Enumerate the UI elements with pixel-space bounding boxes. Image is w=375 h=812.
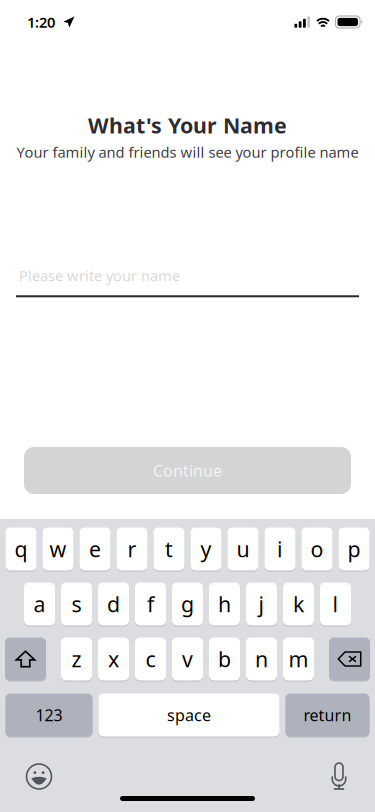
staticText: a [33, 590, 45, 618]
staticText: g [181, 590, 194, 618]
button[interactable]: z [61, 637, 92, 681]
button[interactable]: k [283, 582, 314, 626]
staticText: space [167, 704, 211, 726]
button[interactable]: b [209, 637, 240, 681]
staticText: return [303, 704, 351, 726]
staticText: h [218, 590, 231, 618]
staticText: n [255, 645, 268, 673]
button[interactable]: a [24, 582, 55, 626]
button[interactable]: l [320, 582, 351, 626]
button[interactable]: s [61, 582, 92, 626]
button[interactable]: 123 [5, 693, 92, 737]
staticText: e [89, 535, 101, 563]
button[interactable]: w [42, 527, 73, 571]
button[interactable]: space [98, 693, 279, 737]
staticText: m [288, 645, 308, 673]
button[interactable]: m [283, 637, 314, 681]
button[interactable]: return [285, 693, 369, 737]
staticText: w [49, 535, 66, 563]
staticText: f [147, 590, 154, 618]
staticText: s [71, 590, 81, 618]
staticText: t [165, 535, 173, 563]
staticText: x [108, 645, 119, 673]
staticText: Please write your name [19, 266, 180, 285]
button[interactable]: e [79, 527, 110, 571]
staticText: v [182, 645, 193, 673]
staticText: p [347, 535, 360, 563]
staticText: 123 [35, 704, 62, 726]
button[interactable]: Continue [24, 447, 351, 494]
button[interactable]: v [172, 637, 203, 681]
button[interactable]: x [98, 637, 129, 681]
button[interactable]: n [246, 637, 277, 681]
staticText: d [107, 590, 120, 618]
button[interactable]: f [135, 582, 166, 626]
button[interactable]: g [172, 582, 203, 626]
staticText: y [200, 535, 211, 563]
button[interactable]: y [190, 527, 221, 571]
staticText: q [14, 535, 27, 563]
staticText: i [277, 535, 283, 563]
button[interactable]: p [338, 527, 369, 571]
staticText: 1:20 [27, 12, 55, 32]
button[interactable]: q [5, 527, 36, 571]
button[interactable]: r [116, 527, 147, 571]
staticText: j [258, 590, 264, 618]
button[interactable]: Shift [5, 637, 46, 681]
button[interactable]: o [301, 527, 332, 571]
button[interactable]: Delete [329, 637, 370, 681]
staticText: c [145, 645, 155, 673]
button[interactable]: Dictation [328, 763, 350, 790]
staticText: What's Your Name [88, 111, 287, 139]
staticText: z [71, 645, 81, 673]
button[interactable]: i [264, 527, 295, 571]
staticText: b [218, 645, 231, 673]
staticText: u [236, 535, 249, 563]
staticText: r [127, 535, 136, 563]
button[interactable]: c [135, 637, 166, 681]
staticText: l [332, 590, 338, 618]
button[interactable]: j [246, 582, 277, 626]
button[interactable]: d [98, 582, 129, 626]
staticText: k [293, 590, 304, 618]
button[interactable]: h [209, 582, 240, 626]
staticText: o [310, 535, 323, 563]
staticText: Continue [153, 460, 222, 481]
button[interactable]: t [153, 527, 184, 571]
staticText: Your family and friends will see your pr… [16, 142, 358, 162]
button[interactable]: Emoji keyboard [26, 763, 52, 789]
button[interactable]: u [227, 527, 258, 571]
